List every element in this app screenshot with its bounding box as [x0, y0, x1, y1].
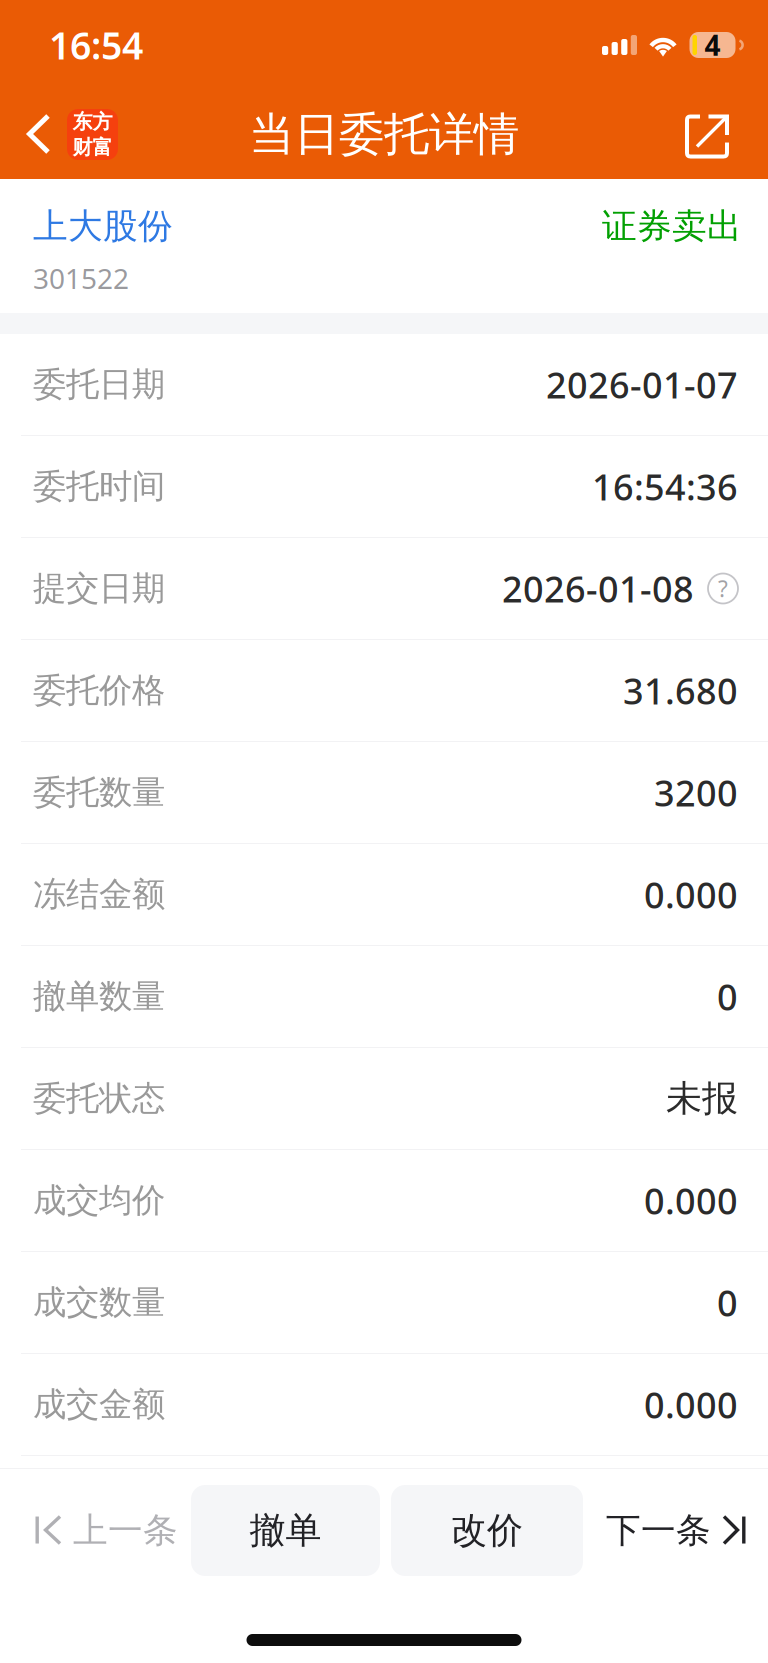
staticText: 冻结金额: [33, 874, 165, 915]
staticText: 下一条: [606, 1509, 711, 1552]
staticText: 委托日期: [33, 364, 165, 405]
staticText: 31.680: [623, 667, 738, 714]
button[interactable]: 改价: [391, 1485, 583, 1576]
staticText: 0.000: [644, 1177, 738, 1224]
staticText: 0: [717, 973, 738, 1020]
staticText: 成交金额: [33, 1384, 165, 1425]
staticText: 改价: [451, 1508, 523, 1553]
staticText: 撤单: [249, 1508, 321, 1553]
staticText: 16:54:36: [592, 463, 738, 510]
staticText: 财富: [72, 135, 112, 160]
staticText: 0.000: [644, 1381, 738, 1428]
staticText: 证券卖出: [602, 205, 742, 248]
staticText: 东方: [72, 109, 112, 134]
staticText: 16:54: [49, 20, 143, 70]
staticText: 301522: [33, 260, 129, 297]
staticText: 0.000: [644, 871, 738, 918]
button[interactable]: 上一条: [0, 1478, 191, 1583]
staticText: 提交日期: [33, 568, 165, 609]
button[interactable]: 撤单: [191, 1485, 380, 1576]
staticText: 成交数量: [33, 1282, 165, 1323]
button[interactable]: 下一条: [583, 1478, 768, 1583]
staticText: 2026-01-08: [502, 565, 694, 612]
staticText: 3200: [654, 769, 738, 816]
staticText: 4: [704, 26, 720, 64]
staticText: 委托数量: [33, 772, 165, 813]
staticText: 委托价格: [33, 670, 165, 711]
staticText: 撤单数量: [33, 976, 165, 1017]
staticText: 委托状态: [33, 1078, 165, 1119]
staticText: ?: [718, 573, 728, 603]
staticText: 2026-01-07: [546, 361, 738, 408]
staticText: 未报: [666, 1076, 738, 1121]
staticText: 当日委托详情: [249, 107, 519, 162]
staticText: 0: [717, 1279, 738, 1326]
staticText: 成交均价: [33, 1180, 165, 1221]
staticText: 上一条: [73, 1509, 178, 1552]
button[interactable]: 返回: [0, 90, 134, 179]
button[interactable]: 分享: [654, 90, 768, 179]
staticText: 委托时间: [33, 466, 165, 507]
staticText: 上大股份: [33, 205, 173, 248]
